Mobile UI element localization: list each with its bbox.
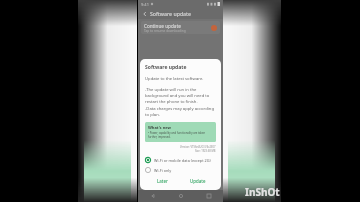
button[interactable]: Continue update	[144, 21, 217, 34]
staticText: Update	[190, 178, 206, 184]
button[interactable]: Back	[138, 190, 167, 202]
staticText: InShOt	[245, 185, 280, 199]
button[interactable]: Home	[167, 190, 195, 202]
staticText: 9:41	[141, 2, 149, 7]
staticText: Continue update	[144, 23, 181, 29]
staticText: What's new	[148, 125, 172, 130]
staticText: • Power, capability and functionality ar…	[148, 131, 213, 139]
staticText: Tap to resume downloading	[144, 29, 186, 33]
staticText: Software update	[150, 10, 192, 17]
button[interactable]: Recent apps	[195, 190, 223, 202]
staticText: Software update	[145, 64, 187, 71]
staticText: Version: VTS6n4UG1.F4c2E07	[180, 145, 216, 149]
staticText: -Data charges may apply according to pla…	[145, 106, 216, 118]
staticText: Size: 1923.68 MB	[195, 149, 216, 153]
button[interactable]: Update	[180, 178, 216, 184]
staticText: -The update will run in the background a…	[145, 87, 216, 105]
button[interactable]: Back	[141, 10, 148, 17]
button[interactable]: Wi-Fi only	[145, 167, 216, 173]
button[interactable]: Wi-Fi or mobile data (except 2G)	[145, 157, 216, 163]
staticText: Wi-Fi only	[154, 168, 172, 173]
button[interactable]: Back	[141, 8, 220, 19]
staticText: Update to the latest software.	[145, 76, 204, 82]
button[interactable]: Update	[211, 25, 217, 31]
staticText: Wi-Fi or mobile data (except 2G)	[154, 158, 211, 163]
button[interactable]: Later	[145, 178, 180, 184]
staticText: Later	[157, 178, 168, 184]
